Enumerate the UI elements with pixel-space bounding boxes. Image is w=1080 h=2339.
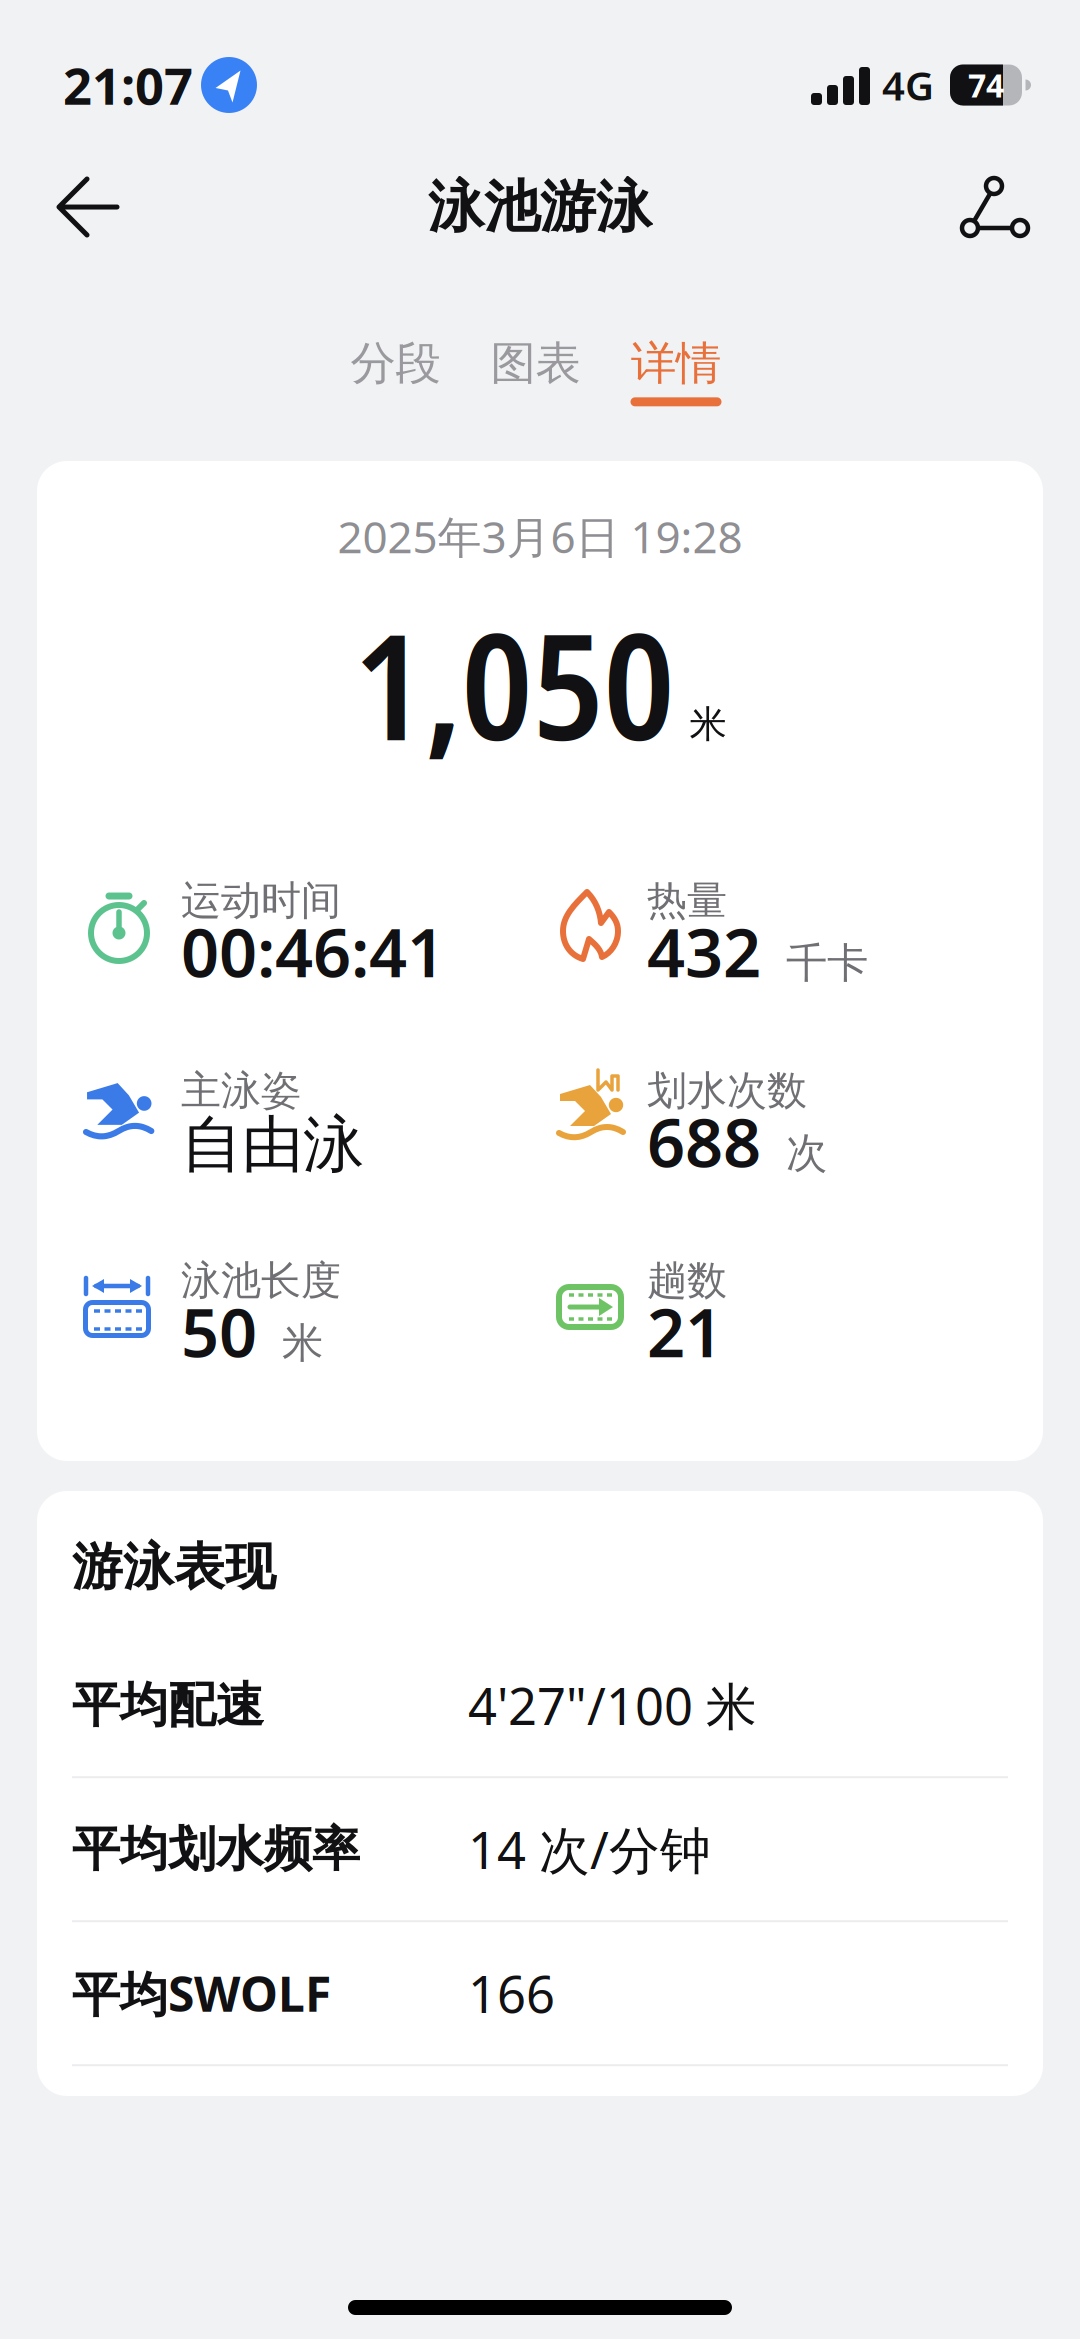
staticText: 自由泳: [181, 1107, 364, 1182]
staticText: 4G: [882, 58, 934, 111]
staticText: 00:46:41: [181, 907, 445, 996]
staticText: 趟数: [647, 1256, 727, 1305]
staticText: 米: [689, 701, 726, 747]
staticText: 运动时间: [181, 876, 341, 925]
staticText: 50: [181, 1287, 257, 1376]
staticText: 21: [647, 1287, 723, 1376]
staticText: 次: [786, 1128, 827, 1179]
staticText: 432: [647, 907, 761, 996]
staticText: 详情: [631, 336, 721, 391]
staticText: 米: [282, 1318, 323, 1369]
staticText: 泳池长度: [181, 1256, 341, 1305]
staticText: 21:07: [63, 51, 193, 119]
button[interactable]: 详情: [630, 336, 721, 406]
staticText: 688: [647, 1097, 761, 1186]
button[interactable]: 分享: [958, 171, 1080, 243]
button[interactable]: 分段: [350, 336, 440, 391]
staticText: 平均SWOLF: [72, 1961, 331, 2025]
staticText: 166: [468, 1960, 555, 2027]
staticText: 2025年3月6日 19:28: [337, 507, 742, 565]
staticText: 平均划水频率: [72, 1820, 360, 1879]
staticText: 平均配速: [72, 1676, 264, 1735]
staticText: 主泳姿: [181, 1066, 301, 1115]
staticText: 4'27"/100 米: [468, 1672, 757, 1739]
staticText: 14 次/分钟: [468, 1816, 711, 1883]
button[interactable]: 返回: [0, 175, 119, 239]
staticText: 74: [968, 64, 1004, 106]
button[interactable]: 图表: [490, 336, 580, 391]
staticText: 1,050: [353, 583, 674, 783]
staticText: 划水次数: [647, 1066, 807, 1115]
staticText: 热量: [647, 876, 727, 925]
staticText: 千卡: [786, 938, 868, 989]
staticText: 图表: [490, 336, 580, 391]
staticText: 游泳表现: [72, 1536, 276, 1598]
staticText: 分段: [350, 336, 440, 391]
staticText: 泳池游泳: [428, 173, 652, 241]
